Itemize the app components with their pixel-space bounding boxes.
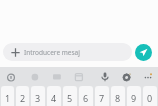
staticText: 8 xyxy=(115,92,121,104)
staticText: 5 xyxy=(67,92,73,104)
button[interactable]: 2 xyxy=(16,86,29,106)
button[interactable]: 0 xyxy=(143,86,157,106)
button[interactable]: Stickers xyxy=(28,70,42,84)
button[interactable]: Attach xyxy=(11,48,20,57)
staticText: 1 xyxy=(5,92,11,104)
button[interactable]: Attach xyxy=(3,43,132,61)
button[interactable]: More xyxy=(141,70,155,84)
staticText: Introducere mesaj xyxy=(24,48,80,57)
staticText: 2 xyxy=(20,92,26,104)
button[interactable]: 6 xyxy=(79,86,93,106)
button[interactable]: GIF xyxy=(50,70,64,84)
button[interactable]: Google xyxy=(4,70,18,84)
button[interactable]: 9 xyxy=(127,86,141,106)
button[interactable]: Settings xyxy=(120,70,134,84)
button[interactable]: 7 xyxy=(95,86,109,106)
button[interactable]: 5 xyxy=(63,86,77,106)
staticText: 0 xyxy=(147,92,153,104)
button[interactable]: 1 xyxy=(1,86,14,106)
staticText: 7 xyxy=(99,92,105,104)
button[interactable]: Send xyxy=(135,44,152,61)
staticText: 6 xyxy=(83,92,89,104)
button[interactable]: 4 xyxy=(47,86,61,106)
button[interactable]: Voice input xyxy=(98,70,112,84)
button[interactable]: 8 xyxy=(111,86,125,106)
button[interactable]: Clipboard xyxy=(72,70,86,84)
staticText: 4 xyxy=(51,92,57,104)
button[interactable]: 3 xyxy=(31,86,45,106)
staticText: 9 xyxy=(131,92,137,104)
staticText: 3 xyxy=(35,92,41,104)
